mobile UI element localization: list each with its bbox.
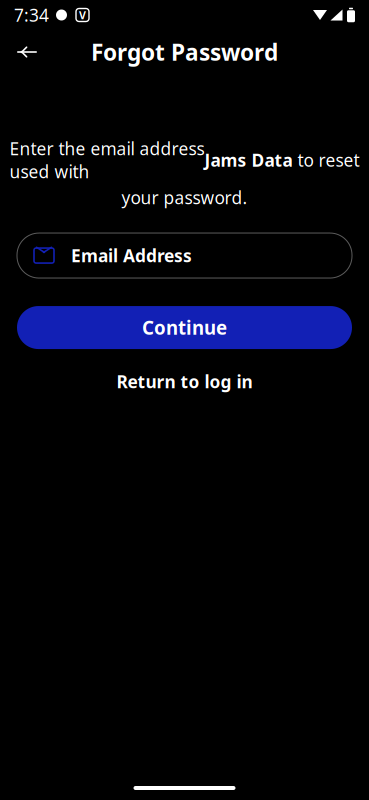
button[interactable]: Back <box>6 33 48 71</box>
staticText: Jams Data <box>204 148 292 171</box>
staticText: Return to log in <box>116 370 252 393</box>
button[interactable]: Return to log in <box>100 362 268 401</box>
button[interactable]: Continue <box>17 306 352 349</box>
button[interactable]: Email Address <box>17 233 352 278</box>
staticText: Email Address <box>71 244 192 267</box>
staticText: V <box>79 8 86 22</box>
staticText: 7:34 <box>14 3 49 26</box>
staticText: Continue <box>142 315 227 340</box>
staticText: your password. <box>121 186 247 209</box>
staticText: to reset <box>292 148 359 171</box>
staticText: Enter the email address used with <box>9 137 204 183</box>
staticText: Forgot Password <box>91 37 278 67</box>
